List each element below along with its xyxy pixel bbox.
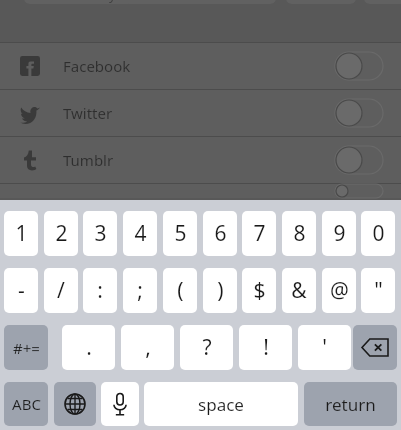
staticText: 8 [293,219,306,248]
staticText: Tumblr [63,150,114,170]
staticText: 7 [253,219,266,248]
button[interactable]: : [83,268,117,313]
staticText: 5 [174,219,187,248]
staticText: @ [330,276,349,305]
button[interactable]: 9 [322,211,356,256]
button[interactable]: . [62,325,115,370]
button[interactable]: Tumblr [0,137,401,183]
button[interactable]: ) [203,268,237,313]
button[interactable]: #+= [4,325,48,370]
staticText: 4 [134,219,147,248]
staticText: 6 [214,219,227,248]
staticText: ; [137,276,143,305]
staticText: #+= [13,338,40,358]
button[interactable]: 8 [282,211,316,256]
button[interactable]: " [361,268,395,313]
button[interactable]: - [4,268,38,313]
staticText: 3 [94,219,107,248]
button[interactable]: , [121,325,174,370]
staticText: Malaka City [45,0,116,4]
button[interactable]: & [282,268,316,313]
button[interactable]: 6 [203,211,237,256]
button[interactable]: 2 [44,211,78,256]
button[interactable]: space [144,382,298,426]
staticText: $ [253,276,266,305]
button[interactable]: @ [322,268,356,313]
staticText: ABC [12,394,41,414]
staticText: : [97,276,103,305]
button[interactable]: ABC [4,382,48,426]
button[interactable]: 3 [83,211,117,256]
button[interactable]: ! [239,325,292,370]
button[interactable]: Change keyboard language [54,382,96,426]
staticText: return [325,393,376,416]
button[interactable]: Toggle [335,52,383,80]
button[interactable]: Toggle [335,146,383,174]
staticText: Twitter [63,103,113,123]
button[interactable]: Toggle [335,184,383,198]
staticText: ! [263,333,269,362]
staticText: " [374,276,383,305]
staticText: ? [202,333,212,362]
button[interactable]: $ [242,268,276,313]
button[interactable]: Twitter [0,90,401,136]
staticText: 2 [55,219,68,248]
button[interactable]: ? [180,325,233,370]
button[interactable]: return [304,382,397,426]
button[interactable]: Backspace [353,325,397,370]
staticText: ) [217,276,224,305]
button[interactable]: ' [298,325,351,370]
staticText: / [57,276,65,305]
button[interactable]: 1 [4,211,38,256]
button[interactable]: 0 [361,211,395,256]
button[interactable]: 5 [163,211,197,256]
button[interactable]: 4 [123,211,157,256]
staticText: ( [177,276,184,305]
staticText: 9 [333,219,346,248]
button[interactable]: 7 [242,211,276,256]
button[interactable]: Toggle [335,99,383,127]
button[interactable]: ( [163,268,197,313]
staticText: ' [322,333,327,362]
button[interactable]: / [44,268,78,313]
staticText: , [145,333,151,362]
button[interactable]: ; [123,268,157,313]
staticText: 1 [15,219,28,248]
staticText: Facebook [63,56,131,76]
staticText: . [86,333,92,362]
staticText: & [291,276,307,305]
button[interactable]: Dictate [101,382,139,426]
button[interactable]: Facebook [0,43,401,89]
staticText: space [198,393,244,416]
staticText: - [18,276,25,305]
staticText: 0 [372,219,385,248]
